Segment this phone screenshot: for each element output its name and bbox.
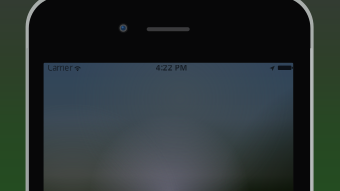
staticText: 4:22 PM [156,62,187,73]
staticText: Carrier [47,62,72,73]
